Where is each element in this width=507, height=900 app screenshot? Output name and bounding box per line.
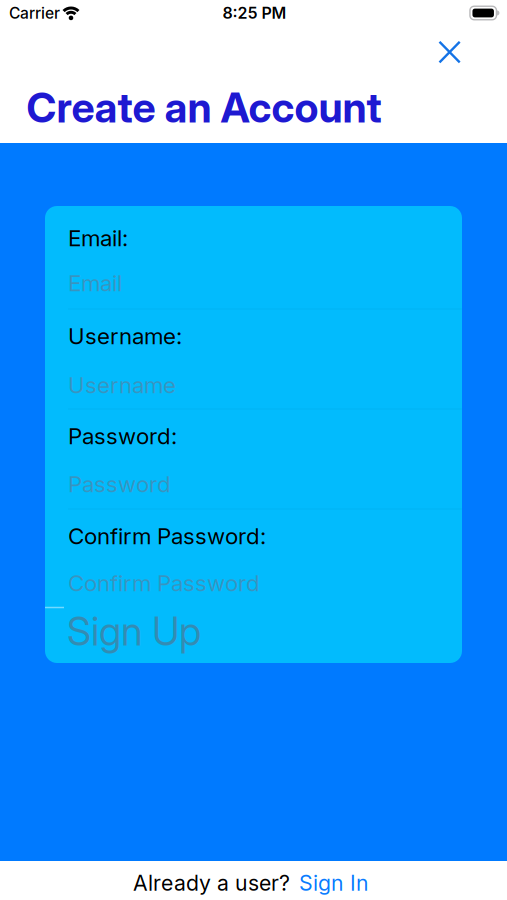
staticText: Password: xyxy=(68,422,177,449)
staticText: Confirm Password xyxy=(68,569,260,596)
button[interactable]: Username xyxy=(68,365,462,405)
staticText: Email: xyxy=(68,224,128,251)
staticText: Confirm Password: xyxy=(68,522,266,549)
staticText: Create an Account xyxy=(26,83,381,132)
button[interactable]: Sign In xyxy=(299,870,369,896)
button[interactable]: Close xyxy=(427,30,471,74)
staticText: Already a user? xyxy=(133,870,290,896)
staticText: 8:25 PM xyxy=(222,3,286,23)
staticText: Username: xyxy=(68,322,182,349)
button[interactable]: Sign Up xyxy=(45,604,462,659)
button[interactable]: Email xyxy=(68,263,462,303)
button[interactable]: Confirm Password xyxy=(68,563,462,603)
staticText: Username xyxy=(68,371,176,398)
staticText: Carrier xyxy=(9,4,60,22)
staticText: Password xyxy=(68,470,171,497)
staticText: Sign Up xyxy=(67,608,201,655)
staticText: Email xyxy=(68,269,122,296)
button[interactable]: Password xyxy=(68,464,462,504)
staticText: Sign In xyxy=(299,870,369,896)
